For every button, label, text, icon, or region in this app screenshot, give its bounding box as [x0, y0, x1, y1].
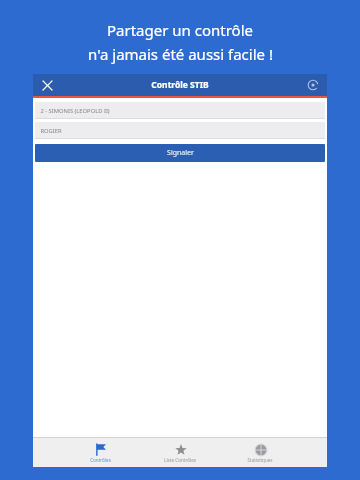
button[interactable]: Contrôles [69, 438, 131, 467]
button[interactable]: Statistiques [229, 438, 291, 467]
staticText: Contrôles [90, 457, 111, 463]
staticText: Contrôle STIB [151, 79, 209, 91]
staticText: Partager un contrôle [107, 20, 253, 40]
staticText: Liste Contrôles [164, 457, 196, 463]
staticText: n'a jamais été aussi facile ! [88, 44, 273, 64]
button[interactable]: Signaler [35, 144, 325, 162]
staticText: ROGIER [40, 127, 62, 135]
staticText: 2 - SIMONIS (LEOPOLD II) [40, 107, 110, 115]
button[interactable]: ROGIER [35, 122, 325, 139]
staticText: Statistiques [247, 457, 273, 463]
staticText: Signaler [167, 148, 194, 158]
button[interactable]: Liste Contrôles [149, 438, 211, 467]
button[interactable]: 2 - SIMONIS (LEOPOLD II) [35, 102, 325, 119]
button[interactable]: Rafraîchir [303, 75, 323, 95]
button[interactable]: Fermer [37, 75, 57, 95]
